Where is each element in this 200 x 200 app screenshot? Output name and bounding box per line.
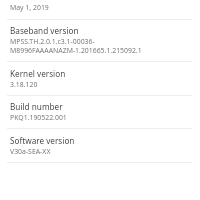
staticText: V30a-SEA-XX [10, 147, 51, 156]
staticText: Baseband version [10, 25, 79, 36]
button[interactable]: Baseband version [0, 20, 200, 61]
staticText: Build number [10, 101, 63, 112]
staticText: May 1, 2019 [10, 3, 49, 12]
staticText: MPSS.TH.2.0.1.c3.1-00036-M8996FAAAANAZM-… [10, 37, 194, 55]
staticText: PKQ1.190522.001 [10, 113, 67, 122]
button[interactable]: May 1, 2019 [0, 0, 200, 19]
staticText: Software version [10, 135, 75, 146]
staticText: Kernel version [10, 68, 66, 79]
button[interactable]: Build number [0, 96, 200, 128]
button[interactable]: Software version [0, 129, 200, 162]
button[interactable]: Kernel version [0, 62, 200, 95]
staticText: 3.18.120 [10, 80, 38, 89]
